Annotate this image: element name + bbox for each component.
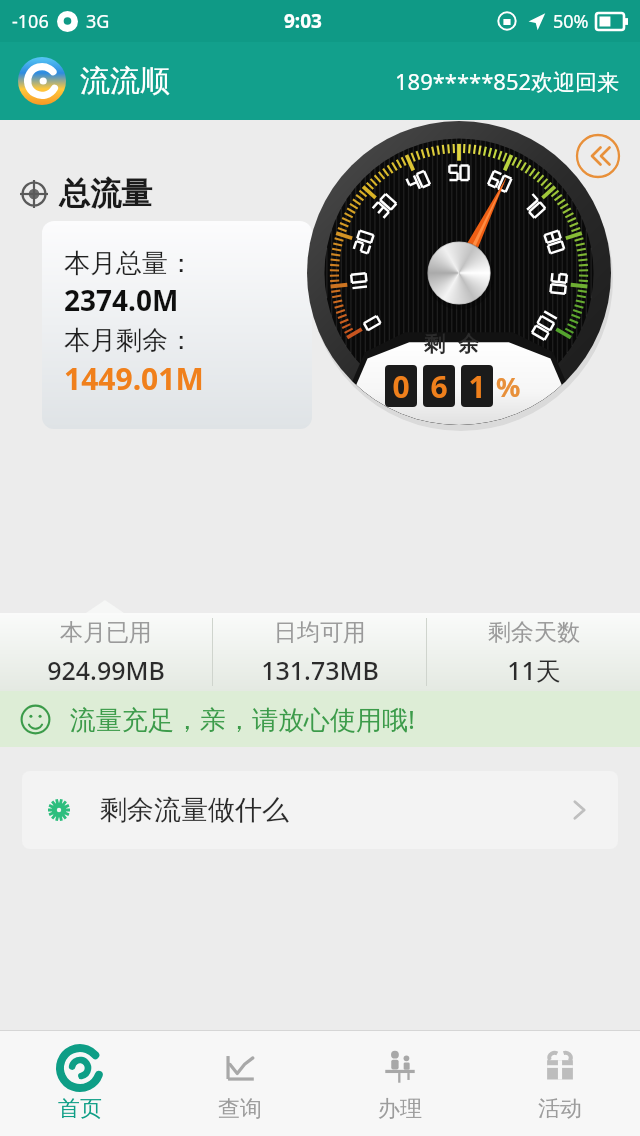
staticText: 总流量 — [59, 174, 152, 213]
staticText: 剩 — [424, 331, 445, 357]
button[interactable]: 本月已用 — [0, 613, 212, 691]
staticText: 本月已用 — [60, 618, 152, 647]
staticText: 本月总量： — [64, 247, 194, 280]
staticText: 办理 — [378, 1095, 422, 1123]
staticText: 1 — [468, 366, 486, 407]
button[interactable]: 首页 — [0, 1031, 160, 1136]
staticText: 流量充足，亲，请放心使用哦! — [70, 701, 415, 737]
staticText: 1449.01M — [64, 358, 204, 399]
staticText: 6 — [430, 366, 448, 407]
staticText: 50% — [553, 9, 589, 34]
staticText: 0 — [392, 366, 410, 407]
staticText: 日均可用 — [274, 618, 366, 647]
staticText: 3G — [86, 9, 110, 34]
button[interactable]: 剩余流量做什么 — [22, 771, 618, 849]
staticText: 流流顺 — [80, 62, 170, 100]
button[interactable]: 总流量 — [20, 174, 152, 213]
button[interactable]: 活动 — [480, 1031, 640, 1136]
button[interactable]: 剩余天数 — [427, 613, 640, 691]
staticText: 剩余流量做什么 — [100, 793, 289, 827]
staticText: -106 — [12, 9, 49, 34]
button[interactable]: 本月总量： — [42, 221, 312, 429]
staticText: 活动 — [538, 1095, 582, 1123]
staticText: 131.73MB — [261, 653, 379, 687]
staticText: 首页 — [58, 1095, 102, 1123]
button[interactable]: Collapse — [575, 133, 621, 179]
staticText: 2374.0M — [64, 281, 179, 319]
staticText: 查询 — [218, 1095, 262, 1123]
staticText: 11天 — [507, 653, 561, 687]
staticText: 9:03 — [284, 8, 322, 34]
button[interactable]: 查询 — [160, 1031, 320, 1136]
staticText: 剩余天数 — [488, 618, 580, 647]
staticText: 924.99MB — [47, 653, 165, 687]
staticText: 本月剩余： — [64, 324, 194, 357]
button[interactable]: 日均可用 — [213, 613, 426, 691]
staticText: 189*****852欢迎回来 — [395, 66, 620, 96]
staticText: 余 — [458, 331, 479, 357]
staticText: % — [496, 368, 521, 405]
other: App logo — [18, 57, 66, 105]
button[interactable]: 办理 — [320, 1031, 480, 1136]
